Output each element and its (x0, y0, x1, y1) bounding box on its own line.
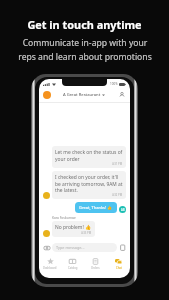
staticText: No problem! 👍 (55, 224, 92, 231)
button[interactable]: No problem! 👍 (52, 221, 95, 237)
staticText: 4:31 PM (112, 162, 123, 166)
button[interactable]: Attach file (118, 243, 127, 252)
staticText: 4:32 PM (112, 193, 123, 197)
staticText: Type message... (56, 245, 85, 250)
button[interactable]: Chat (107, 254, 130, 274)
button[interactable]: Menu (43, 91, 51, 99)
button[interactable]: Orders (84, 254, 107, 274)
staticText: Great, Thanks! 👍 (79, 205, 113, 210)
button[interactable]: Camera (42, 243, 51, 252)
staticText: I checked on your order, it'll be arrivi… (55, 174, 123, 193)
button[interactable]: Great, Thanks! 👍 (75, 202, 117, 213)
button[interactable]: Let me check on the status of your order (52, 146, 126, 168)
button[interactable]: Catalog (61, 254, 84, 274)
button[interactable]: Type message... (52, 243, 117, 252)
staticText: 100% (110, 82, 118, 86)
button[interactable]: Dashboard (39, 254, 61, 274)
staticText: 4:33 PM (81, 231, 92, 235)
staticText: Get in touch anytime (27, 17, 142, 32)
staticText: A Great Restaurant (63, 92, 101, 98)
button[interactable]: Contact info (118, 91, 126, 99)
staticText: Kara Fosburrow (52, 216, 76, 220)
button[interactable]: A Great Restaurant (63, 92, 105, 98)
staticText: AB (121, 208, 125, 212)
staticText: Catalog (68, 266, 78, 270)
staticText: Let me check on the status of your order (55, 149, 123, 162)
staticText: Orders (91, 266, 100, 270)
staticText: Chat (116, 266, 122, 270)
button[interactable]: I checked on your order, it'll be arrivi… (52, 171, 126, 199)
staticText: Communicate in-app with your reps and le… (18, 37, 152, 62)
staticText: Dashboard (43, 266, 57, 270)
